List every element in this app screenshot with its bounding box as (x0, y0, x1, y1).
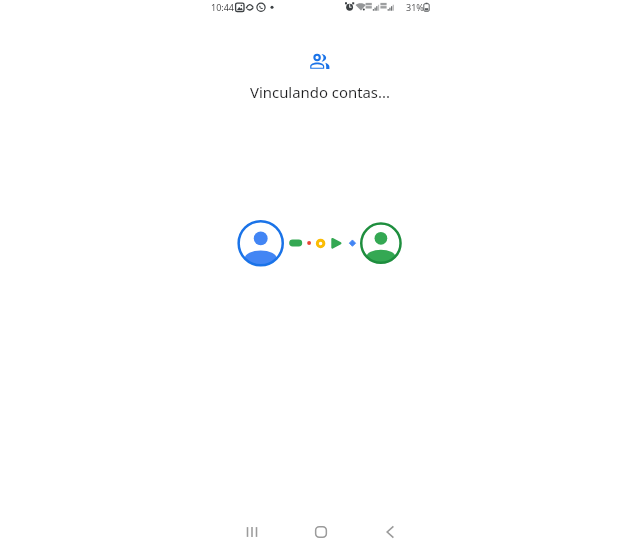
staticText: 10:44 (211, 1, 235, 13)
staticText: 31% (406, 1, 424, 13)
staticText: Vinculando contas... (0, 82, 640, 102)
button[interactable]: Recent apps (232, 514, 272, 548)
button[interactable]: Back (370, 514, 410, 548)
button[interactable]: Home (301, 514, 341, 548)
